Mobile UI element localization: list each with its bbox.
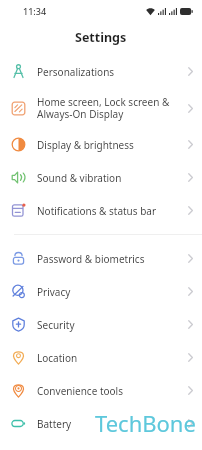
button[interactable]: Battery xyxy=(0,407,202,440)
staticText: Convenience tools xyxy=(37,384,178,398)
button[interactable]: Notifications & status bar xyxy=(0,194,202,227)
button[interactable]: Personalizations xyxy=(0,55,202,88)
staticText: TechBone xyxy=(95,408,196,438)
staticText: Privacy xyxy=(37,285,178,299)
button[interactable]: Home screen, Lock screen & Always-On Dis… xyxy=(0,88,202,128)
button[interactable]: Convenience tools xyxy=(0,374,202,407)
button[interactable]: Location xyxy=(0,341,202,374)
button[interactable]: Display & brightness xyxy=(0,128,202,161)
staticText: Personalizations xyxy=(37,65,178,79)
button[interactable]: Security xyxy=(0,308,202,341)
staticText: Location xyxy=(37,351,178,365)
button[interactable]: Password & biometrics xyxy=(0,242,202,275)
staticText: Settings xyxy=(75,29,127,46)
button[interactable]: Sound & vibration xyxy=(0,161,202,194)
staticText: Sound & vibration xyxy=(37,171,178,185)
button[interactable]: Privacy xyxy=(0,275,202,308)
staticText: Password & biometrics xyxy=(37,252,178,266)
staticText: Display & brightness xyxy=(37,138,178,152)
staticText: Security xyxy=(37,318,178,332)
staticText: Notifications & status bar xyxy=(37,204,178,218)
staticText: Battery xyxy=(37,417,178,431)
staticText: 11:34 xyxy=(23,5,47,17)
staticText: Home screen, Lock screen & Always-On Dis… xyxy=(37,95,178,121)
